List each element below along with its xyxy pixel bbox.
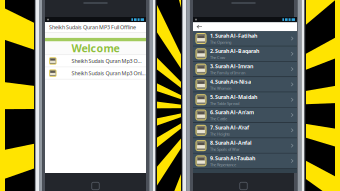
staticText: The Spoils of War	[210, 147, 240, 152]
staticText: The Women	[210, 85, 231, 91]
staticText: 2. Surah Al-Baqarah	[210, 47, 259, 55]
button[interactable]: Sheikh Sudais Quran Mp3 Online	[45, 67, 146, 79]
button[interactable]: Sheikh Sudais Quran MP3 Full Offline	[45, 22, 146, 32]
button[interactable]: 1. Surah Al-Fatihah	[193, 31, 297, 46]
button[interactable]: 6. Surah Al-An'am	[193, 108, 297, 122]
button[interactable]: Back	[193, 22, 297, 31]
staticText: The Cattle	[210, 116, 227, 121]
staticText: The Opening	[210, 39, 231, 45]
staticText: The Family of Imran	[210, 70, 245, 75]
staticText: Sheikh Sudais Quran MP3 Full Offline	[49, 24, 136, 31]
staticText: The Cow	[210, 55, 225, 60]
button[interactable]: 5. Surah Al-Maidah	[193, 92, 297, 107]
staticText: Welcome	[71, 41, 119, 55]
button[interactable]: 4. Surah An-Nisa	[193, 77, 297, 92]
staticText: The Table Spread	[210, 101, 239, 106]
button[interactable]: 9. Surah At-Taubah	[193, 154, 297, 168]
staticText: 8. Surah Al-Anfal	[210, 139, 252, 146]
staticText: 9. Surah At-Taubah	[210, 155, 255, 162]
staticText: 7. Surah Al-A'raf	[210, 124, 249, 131]
staticText: The Repentance	[210, 162, 236, 167]
staticText: 4. Surah An-Nisa	[210, 78, 251, 85]
staticText: 5. Surah Al-Maidah	[210, 93, 257, 100]
button[interactable]: 8. Surah Al-Anfal	[193, 138, 297, 153]
button[interactable]: 3. Surah Al-Imran	[193, 62, 297, 76]
staticText: 3. Surah Al-Imran	[210, 63, 253, 70]
staticText: Sheikh Sudais Quran Mp3 Offline	[72, 57, 146, 64]
button[interactable]: 2. Surah Al-Baqarah	[193, 46, 297, 61]
button[interactable]: Sheikh Sudais Quran Mp3 Offline	[45, 55, 146, 67]
staticText: The Heights	[210, 131, 230, 137]
staticText: 1. Surah Al-Fatihah	[210, 32, 257, 39]
staticText: 6. Surah Al-An'am	[210, 109, 254, 116]
staticText: Sheikh Sudais Quran Mp3 Online	[72, 70, 146, 77]
button[interactable]: 7. Surah Al-A'raf	[193, 123, 297, 138]
